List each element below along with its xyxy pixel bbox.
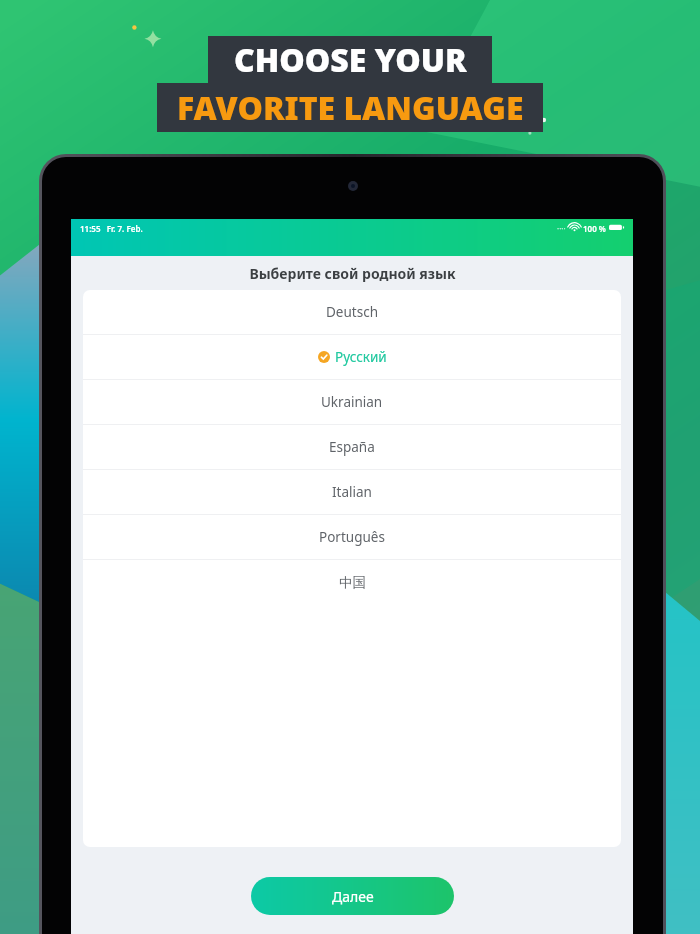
- button[interactable]: España: [83, 425, 621, 469]
- staticText: 11:55 Fr. 7. Feb.: [80, 223, 143, 234]
- staticText: España: [329, 438, 375, 456]
- staticText: Русский: [335, 348, 387, 366]
- staticText: Ukrainian: [321, 393, 383, 411]
- staticText: Italian: [332, 483, 372, 501]
- button[interactable]: Italian: [83, 470, 621, 514]
- staticText: Deutsch: [326, 303, 378, 321]
- staticText: Далее: [332, 887, 374, 906]
- staticText: Выберите свой родной язык: [249, 264, 456, 283]
- button[interactable]: Русский: [83, 335, 621, 379]
- staticText: CHOOSE YOUR: [234, 38, 467, 82]
- staticText: ····: [557, 223, 566, 234]
- staticText: FAVORITE LANGUAGE: [177, 86, 524, 130]
- staticText: 100 %: [583, 223, 606, 234]
- button[interactable]: Ukrainian: [83, 380, 621, 424]
- button[interactable]: Português: [83, 515, 621, 559]
- staticText: 中国: [339, 574, 366, 591]
- button[interactable]: Далее: [251, 877, 454, 915]
- button[interactable]: Deutsch: [83, 290, 621, 334]
- staticText: Português: [319, 528, 385, 546]
- button[interactable]: 中国: [83, 560, 621, 604]
